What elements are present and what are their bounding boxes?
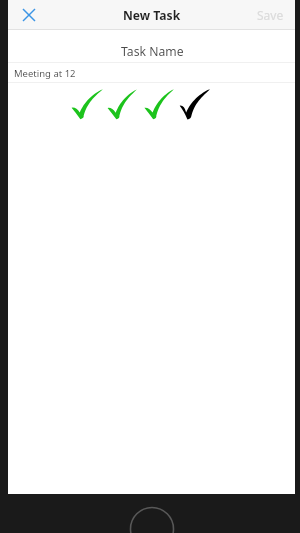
staticText: New Task xyxy=(123,7,181,23)
staticText: Meeting at 12 xyxy=(14,67,76,80)
button[interactable]: Close xyxy=(16,2,42,28)
button[interactable]: Check mark emoji xyxy=(8,84,295,130)
staticText: Save xyxy=(257,7,284,23)
button[interactable]: Meeting at 12 xyxy=(8,63,295,83)
button[interactable]: Save xyxy=(246,1,295,29)
staticText: Task Name xyxy=(121,43,184,60)
button[interactable]: Task Name xyxy=(8,30,295,63)
other: Home xyxy=(0,0,300,533)
